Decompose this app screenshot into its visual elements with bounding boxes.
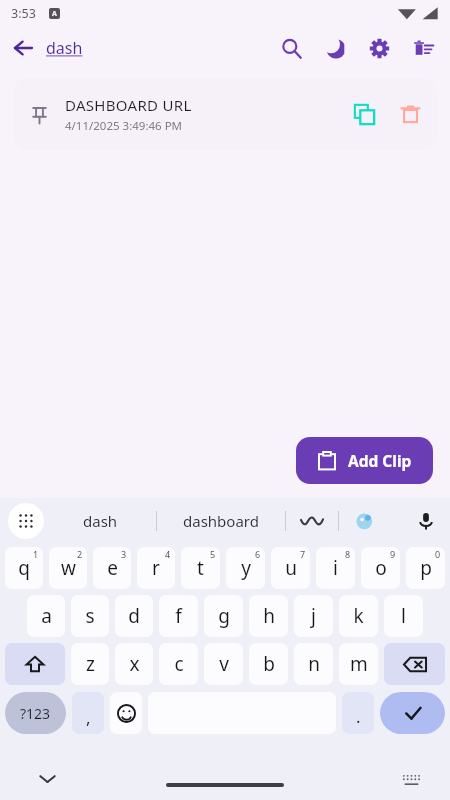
button[interactable]: dashboard (157, 498, 285, 544)
button[interactable]: k (339, 595, 378, 637)
button[interactable]: Settings (357, 26, 401, 70)
staticText: x (129, 651, 140, 677)
staticText: v (219, 651, 229, 677)
staticText: f (175, 603, 182, 629)
button[interactable]: x (115, 643, 153, 685)
button[interactable]: j (294, 595, 333, 637)
staticText: 0 (435, 548, 441, 560)
button[interactable]: h (249, 595, 288, 637)
staticText: 4 (165, 548, 171, 560)
button[interactable]: Enter (380, 692, 445, 734)
button[interactable]: Backspace (384, 643, 445, 685)
button[interactable]: p (406, 547, 445, 589)
staticText: b (263, 651, 275, 677)
staticText: DASHBOARD URL (65, 95, 192, 115)
staticText: r (152, 555, 160, 581)
button[interactable]: Add Clip (296, 437, 433, 484)
button[interactable]: . (342, 692, 374, 734)
staticText: 6 (255, 548, 261, 560)
button[interactable]: l (384, 595, 423, 637)
staticText: o (375, 555, 387, 581)
staticText: z (86, 651, 95, 677)
staticText: A (52, 9, 57, 19)
staticText: c (174, 651, 184, 677)
staticText: dashboard (183, 511, 259, 531)
staticText: 9 (390, 548, 396, 560)
button[interactable]: dash (44, 498, 156, 544)
staticText: . (356, 705, 361, 728)
button[interactable]: Handwriting (286, 498, 338, 544)
staticText: m (350, 651, 368, 677)
staticText: l (401, 603, 406, 629)
button[interactable]: q (5, 547, 43, 589)
button[interactable]: ?123 (5, 692, 66, 734)
button[interactable]: t (181, 547, 220, 589)
staticText: p (420, 555, 432, 581)
button[interactable]: r (137, 547, 175, 589)
button[interactable]: Pin (13, 78, 437, 150)
button[interactable]: s (71, 595, 109, 637)
staticText: u (285, 555, 297, 581)
button[interactable]: Delete (387, 91, 433, 137)
button[interactable]: Search (269, 26, 313, 70)
button[interactable]: Shift (5, 643, 65, 685)
button[interactable]: , (72, 692, 104, 734)
staticText: g (218, 603, 230, 629)
staticText: k (353, 603, 364, 629)
staticText: s (85, 603, 95, 629)
button[interactable]: c (159, 643, 198, 685)
button[interactable]: Copy (341, 91, 387, 137)
button[interactable]: f (159, 595, 198, 637)
staticText: e (107, 555, 118, 581)
button[interactable]: Voice input (402, 498, 450, 544)
staticText: 8 (345, 548, 351, 560)
button[interactable]: a (27, 595, 65, 637)
staticText: Add Clip (348, 450, 412, 471)
staticText: w (61, 555, 76, 581)
staticText: 3:53 (11, 5, 36, 22)
button[interactable]: w (49, 547, 87, 589)
button[interactable]: m (339, 643, 378, 685)
button[interactable]: Back (0, 26, 46, 70)
staticText: h (263, 603, 275, 629)
staticText: t (197, 555, 204, 581)
staticText: 4/11/2025 3:49:46 PM (65, 118, 183, 134)
staticText: , (86, 706, 91, 729)
button[interactable]: d (115, 595, 153, 637)
staticText: q (18, 555, 30, 581)
staticText: d (128, 603, 140, 629)
staticText: dash (83, 511, 118, 531)
staticText: a (41, 603, 52, 629)
staticText: y (241, 555, 251, 581)
button[interactable]: y (226, 547, 265, 589)
button[interactable]: Delete all (401, 26, 445, 70)
button[interactable]: Emoji sticker (339, 498, 391, 544)
staticText: 1 (33, 548, 39, 560)
button[interactable]: Night mode (313, 26, 357, 70)
button[interactable]: Pin (13, 88, 65, 140)
staticText: ?123 (20, 704, 51, 723)
staticText: j (311, 603, 316, 629)
button[interactable]: Emoji (110, 692, 142, 734)
staticText: 3 (121, 548, 127, 560)
button[interactable]: n (294, 643, 333, 685)
button[interactable]: g (204, 595, 243, 637)
button[interactable]: v (204, 643, 243, 685)
staticText: 5 (210, 548, 216, 560)
button[interactable]: o (361, 547, 400, 589)
button[interactable]: e (93, 547, 131, 589)
button[interactable]: dash (46, 26, 166, 70)
staticText: i (333, 555, 338, 581)
button[interactable]: Hide keyboard (30, 762, 64, 796)
button[interactable]: Keyboard options (8, 503, 44, 539)
button[interactable]: z (71, 643, 109, 685)
button[interactable]: b (249, 643, 288, 685)
staticText: dash (46, 37, 83, 59)
staticText: 7 (300, 548, 306, 560)
button[interactable]: u (271, 547, 310, 589)
staticText: n (308, 651, 320, 677)
button[interactable]: i (316, 547, 355, 589)
staticText: 2 (77, 548, 83, 560)
button[interactable]: Switch keyboard (394, 762, 428, 796)
